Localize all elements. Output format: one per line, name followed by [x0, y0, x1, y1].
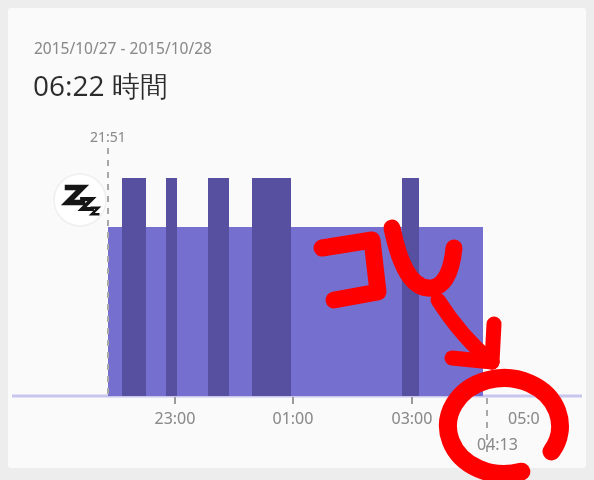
button[interactable]: Sleep chart 2015/10/27 to 2015/10/28: [0, 0, 594, 480]
